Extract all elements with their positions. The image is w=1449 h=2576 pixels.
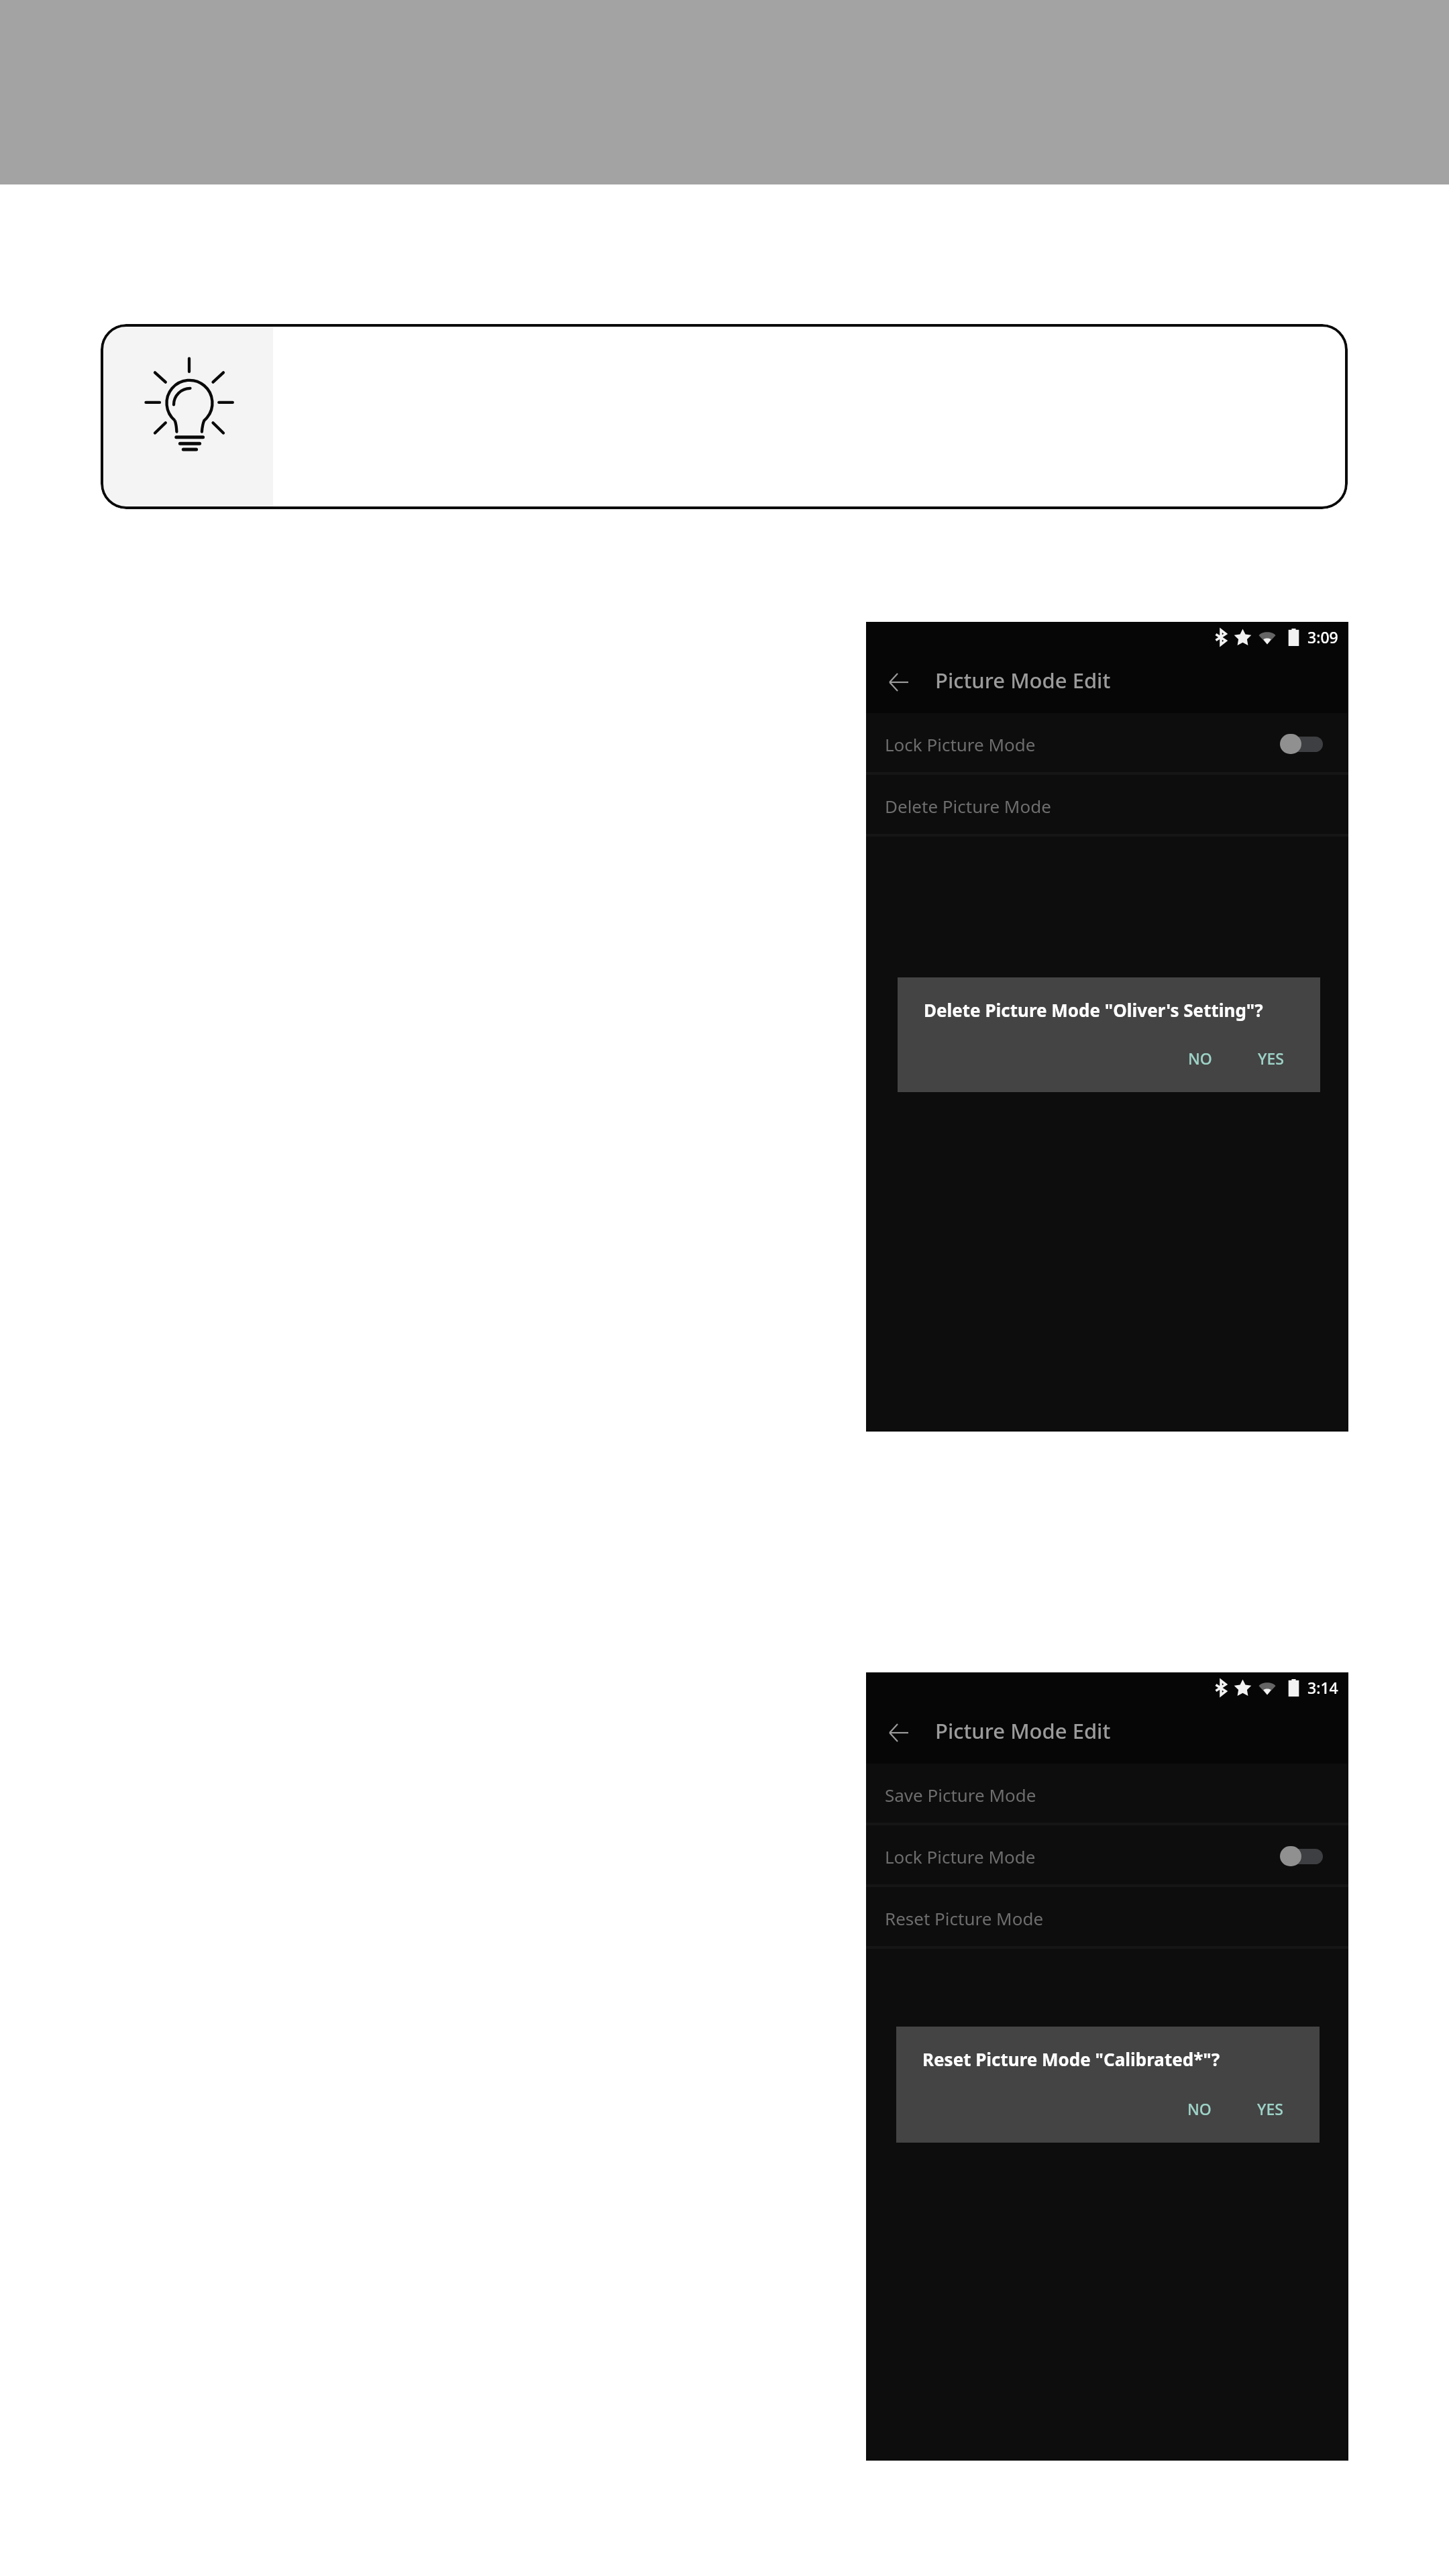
staticText: Picture Mode Edit <box>935 1717 1111 1745</box>
button[interactable]: Save Picture Mode <box>866 1764 1348 1825</box>
staticText: 3:09 <box>1307 627 1338 647</box>
staticText: Lock Picture Mode <box>885 1845 1036 1868</box>
staticText: NO <box>1187 2098 1212 2119</box>
staticText: Delete Picture Mode <box>885 794 1051 818</box>
staticText: Picture Mode Edit <box>935 666 1111 694</box>
staticText: Save Picture Mode <box>885 1783 1036 1807</box>
button[interactable]: YES <box>1249 2092 1291 2126</box>
button[interactable]: Back <box>882 1717 914 1749</box>
button[interactable]: YES <box>1250 1041 1292 1075</box>
staticText: YES <box>1258 1048 1284 1069</box>
button[interactable]: NO <box>1179 2092 1220 2126</box>
button[interactable]: NO <box>1180 1041 1220 1075</box>
staticText: Reset Picture Mode "Calibrated*"? <box>922 2047 1220 2071</box>
button[interactable]: Toggle Lock Picture Mode <box>1280 734 1323 754</box>
staticText: 3:14 <box>1307 1677 1338 1698</box>
staticText: YES <box>1257 2098 1283 2119</box>
button[interactable]: Toggle Lock Picture Mode <box>1280 1846 1323 1866</box>
button[interactable]: Lock Picture Mode <box>866 713 1348 775</box>
staticText: Lock Picture Mode <box>885 733 1036 756</box>
button[interactable]: Delete Picture Mode <box>866 775 1348 837</box>
button[interactable]: Lock Picture Mode <box>866 1825 1348 1887</box>
staticText: Reset Picture Mode <box>885 1907 1044 1930</box>
button[interactable]: Back <box>882 666 914 698</box>
button[interactable]: Reset Picture Mode <box>866 1887 1348 1949</box>
staticText: Delete Picture Mode "Oliver's Setting"? <box>924 998 1263 1022</box>
staticText: NO <box>1188 1048 1212 1069</box>
